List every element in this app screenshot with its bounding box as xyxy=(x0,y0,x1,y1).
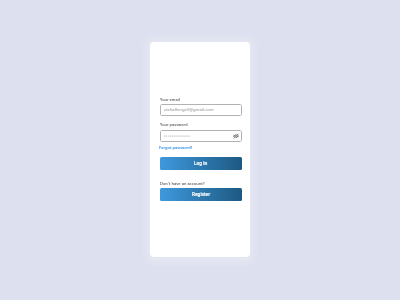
button[interactable]: Register xyxy=(160,188,242,201)
staticText: Don't have an account? xyxy=(160,181,205,186)
staticText: uichallenge3@gmail.com xyxy=(164,107,214,113)
button[interactable]: Forgot password? xyxy=(159,145,193,150)
button[interactable]: Show password xyxy=(232,132,239,139)
button[interactable]: Show password xyxy=(160,130,242,142)
staticText: Your password xyxy=(160,122,188,127)
button[interactable]: uichallenge3@gmail.com xyxy=(160,104,242,116)
staticText: Register xyxy=(192,191,211,197)
staticText: Your email xyxy=(160,97,180,102)
button[interactable]: Log in xyxy=(160,157,242,170)
staticText: Log in xyxy=(194,160,208,166)
